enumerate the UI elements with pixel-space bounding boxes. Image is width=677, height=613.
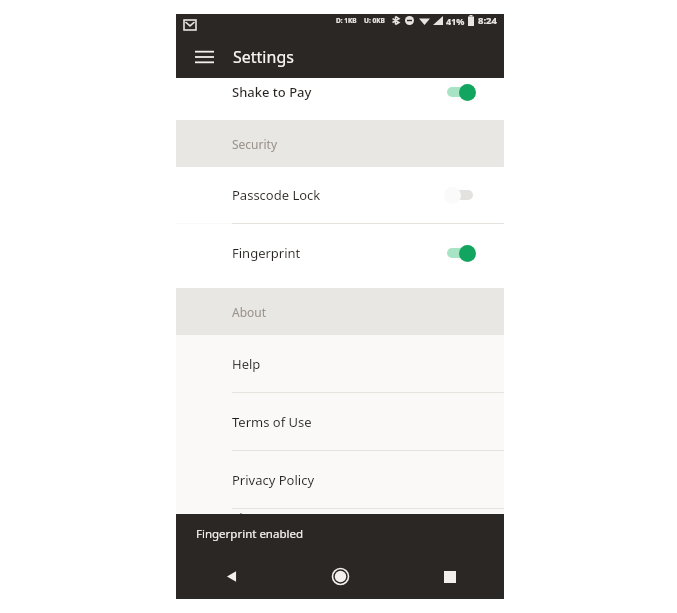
button[interactable]: Sign Out xyxy=(176,509,504,514)
button[interactable]: Passcode Lock xyxy=(176,167,504,223)
staticText: Fingerprint enabled xyxy=(196,526,304,542)
button[interactable]: Privacy Policy xyxy=(176,451,504,508)
staticText: Terms of Use xyxy=(232,413,312,431)
staticText: Privacy Policy xyxy=(232,471,315,489)
staticText: Fingerprint xyxy=(232,244,444,262)
button[interactable]: Recent apps xyxy=(395,554,504,599)
staticText: Help xyxy=(232,355,261,373)
staticText: 41% xyxy=(446,15,465,27)
staticText: Shake to Pay xyxy=(232,83,444,101)
staticText: Passcode Lock xyxy=(232,186,444,204)
button[interactable]: Back xyxy=(176,554,286,599)
button[interactable]: Open navigation menu xyxy=(182,36,226,78)
staticText: 8:24 xyxy=(478,14,497,27)
button[interactable]: Help xyxy=(176,335,504,392)
staticText: Security xyxy=(232,136,278,152)
staticText: About xyxy=(232,304,267,320)
button[interactable]: Terms of Use xyxy=(176,393,504,450)
button[interactable]: Fingerprint xyxy=(176,224,504,282)
staticText: U: 0KB xyxy=(364,16,385,25)
staticText: Sign Out xyxy=(232,509,285,514)
staticText: Settings xyxy=(233,46,294,68)
staticText: D: 1KB xyxy=(336,16,357,25)
button[interactable]: Home xyxy=(286,554,395,599)
button[interactable]: Shake to Pay xyxy=(176,78,504,106)
